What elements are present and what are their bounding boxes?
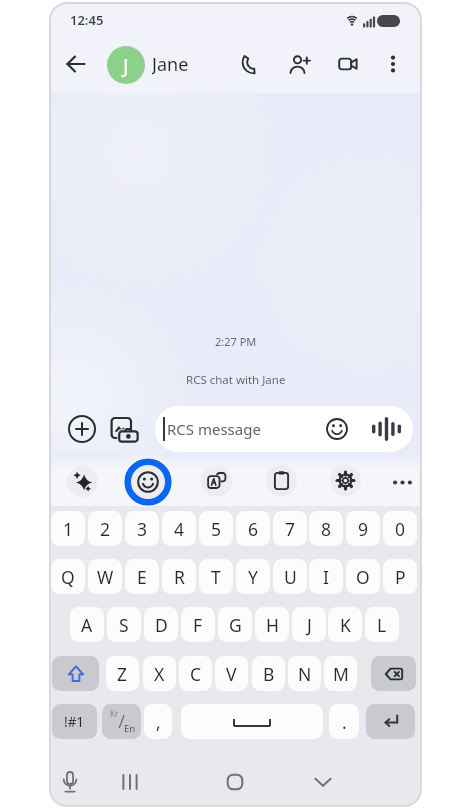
button[interactable]	[57, 768, 83, 794]
staticText: A	[81, 613, 93, 637]
staticText: 2:27 PM	[215, 334, 257, 349]
button[interactable]	[239, 51, 265, 77]
button[interactable]: Z	[106, 656, 139, 691]
button[interactable]	[181, 704, 323, 739]
button[interactable]: H	[255, 607, 289, 642]
button[interactable]	[117, 769, 143, 795]
button[interactable]	[121, 456, 174, 509]
staticText: D	[155, 613, 168, 637]
button[interactable]: B	[252, 656, 285, 691]
button[interactable]	[380, 51, 406, 77]
button[interactable]: I	[309, 559, 343, 594]
staticText: En	[124, 722, 136, 735]
staticText: 2	[100, 517, 111, 541]
button[interactable]: T	[199, 559, 233, 594]
staticText: 0	[395, 517, 406, 541]
button[interactable]	[63, 51, 89, 77]
button[interactable]: Jane	[152, 52, 242, 76]
button[interactable]: M	[324, 656, 357, 691]
staticText: 4	[174, 517, 185, 541]
staticText: K	[340, 613, 351, 637]
staticText: G	[229, 613, 242, 637]
staticText: Z	[117, 662, 128, 686]
staticText: .	[342, 710, 347, 734]
staticText: B	[263, 662, 275, 686]
button[interactable]: 2	[88, 511, 122, 546]
button[interactable]: G	[218, 607, 252, 642]
button[interactable]	[52, 656, 99, 691]
button[interactable]: Y	[236, 559, 270, 594]
button[interactable]: O	[346, 559, 380, 594]
staticText: ,	[156, 710, 161, 734]
button[interactable]: A	[70, 607, 104, 642]
staticText: S	[119, 613, 129, 637]
staticText: U	[284, 565, 297, 589]
button[interactable]	[67, 466, 98, 497]
staticText: 3	[137, 517, 148, 541]
button[interactable]	[155, 406, 413, 452]
staticText: C	[190, 662, 202, 686]
button[interactable]: 6	[236, 511, 270, 546]
staticText: N	[298, 662, 312, 686]
staticText: L	[377, 613, 387, 637]
button[interactable]: X	[143, 656, 176, 691]
button[interactable]: 9	[346, 511, 380, 546]
button[interactable]: 3	[125, 511, 159, 546]
staticText: Jane	[152, 52, 189, 76]
staticText: Y	[248, 565, 258, 589]
staticText: 9	[358, 517, 369, 541]
button[interactable]: E	[125, 559, 159, 594]
button[interactable]	[310, 769, 336, 795]
staticText: 1	[63, 517, 74, 541]
button[interactable]	[370, 414, 400, 444]
staticText: V	[226, 662, 237, 686]
button[interactable]: U	[273, 559, 307, 594]
button[interactable]: Q	[51, 559, 85, 594]
button[interactable]: J	[107, 46, 145, 84]
button[interactable]: Kr	[102, 704, 141, 739]
button[interactable]: 4	[162, 511, 196, 546]
staticText: I	[323, 565, 329, 589]
button[interactable]: 7	[273, 511, 307, 546]
staticText: 12:45	[70, 11, 104, 29]
button[interactable]: ,	[144, 704, 172, 739]
button[interactable]: 8	[309, 511, 343, 546]
button[interactable]	[266, 465, 297, 496]
button[interactable]: 1	[51, 511, 85, 546]
button[interactable]	[330, 465, 361, 496]
staticText: 5	[211, 517, 222, 541]
staticText: X	[154, 662, 165, 686]
button[interactable]: V	[215, 656, 248, 691]
button[interactable]	[371, 656, 416, 691]
button[interactable]: S	[107, 607, 141, 642]
button[interactable]: P	[383, 559, 417, 594]
button[interactable]: D	[144, 607, 178, 642]
button[interactable]: L	[365, 607, 399, 642]
button[interactable]: F	[181, 607, 215, 642]
button[interactable]	[201, 466, 232, 497]
button[interactable]	[222, 769, 248, 795]
button[interactable]	[286, 51, 312, 77]
staticText: O	[356, 565, 370, 589]
button[interactable]: W	[88, 559, 122, 594]
button[interactable]: N	[288, 656, 321, 691]
button[interactable]: !#1	[52, 704, 97, 739]
button[interactable]: K	[328, 607, 362, 642]
button[interactable]	[324, 416, 350, 442]
button[interactable]: 0	[383, 511, 417, 546]
button[interactable]	[366, 704, 415, 739]
button[interactable]: 5	[199, 511, 233, 546]
button[interactable]: .	[329, 704, 359, 739]
button[interactable]	[67, 414, 97, 444]
staticText: F	[193, 613, 203, 637]
button[interactable]: J	[292, 607, 326, 642]
button[interactable]: R	[162, 559, 196, 594]
button[interactable]	[387, 467, 418, 498]
button[interactable]	[110, 414, 140, 444]
staticText: !#1	[64, 713, 85, 731]
staticText: RCS message	[167, 419, 261, 439]
staticText: Kr	[110, 708, 119, 719]
staticText: T	[211, 565, 221, 589]
button[interactable]: C	[179, 656, 212, 691]
button[interactable]	[335, 51, 361, 77]
